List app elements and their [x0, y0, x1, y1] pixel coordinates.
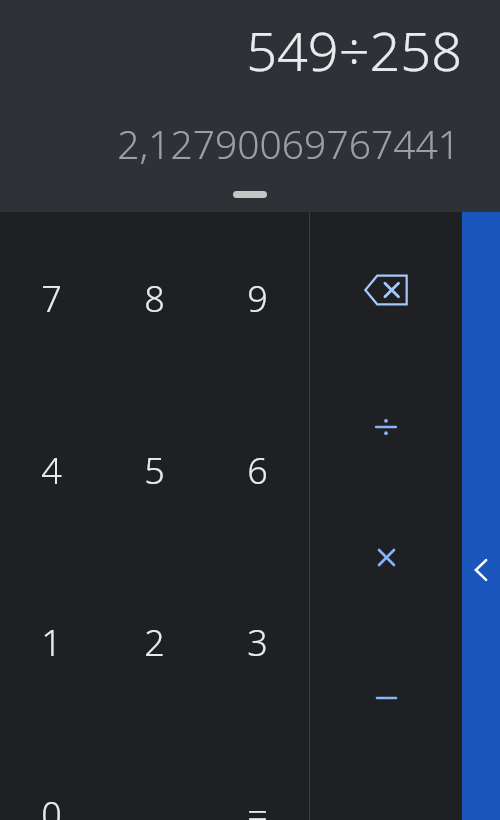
button[interactable]: 7 — [0, 212, 103, 384]
staticText: 4 — [41, 446, 62, 495]
staticText: 0 — [41, 790, 62, 820]
button[interactable]: 2 — [103, 556, 206, 728]
staticText: 2 — [144, 618, 165, 667]
button[interactable]: 4 — [0, 384, 103, 556]
button[interactable]: Multiply — [310, 492, 462, 627]
button[interactable]: Minus — [310, 627, 462, 767]
staticText: 5 — [144, 446, 165, 495]
staticText: = — [247, 790, 268, 820]
button[interactable]: 0 — [0, 728, 103, 820]
button[interactable]: 9 — [206, 212, 309, 384]
button[interactable]: Divide — [310, 352, 462, 492]
staticText: 8 — [144, 274, 165, 323]
button[interactable]: Backspace — [310, 212, 462, 352]
staticText: 3 — [247, 618, 268, 667]
staticText: 9 — [247, 274, 268, 323]
button[interactable]: 8 — [103, 212, 206, 384]
staticText: 6 — [247, 446, 268, 495]
button[interactable]: 5 — [103, 384, 206, 556]
button[interactable]: 1 — [0, 556, 103, 728]
button[interactable]: = — [206, 728, 309, 820]
button[interactable]: Open scientific keypad — [462, 212, 500, 820]
staticText: 2,12790069767441 — [117, 117, 460, 170]
button[interactable]: 6 — [206, 384, 309, 556]
staticText: 7 — [41, 274, 62, 323]
staticText: 549÷258 — [246, 13, 462, 87]
button[interactable]: 3 — [206, 556, 309, 728]
staticText: 1 — [41, 618, 62, 667]
button[interactable]: Expand history — [233, 191, 267, 198]
